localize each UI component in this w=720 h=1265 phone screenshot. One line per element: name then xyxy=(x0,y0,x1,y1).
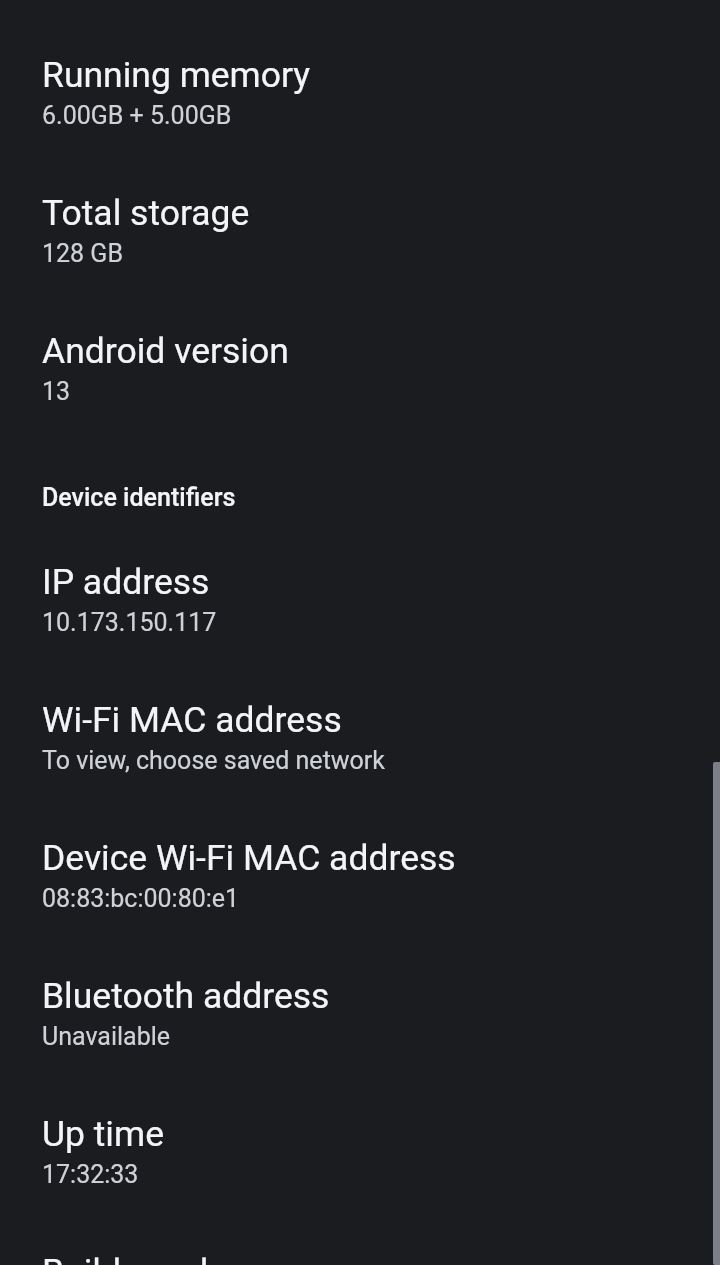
button[interactable]: IP address xyxy=(0,547,720,651)
button[interactable]: Up time xyxy=(0,1099,720,1203)
button[interactable]: Total storage xyxy=(0,178,720,282)
button[interactable]: Device Wi-Fi MAC address xyxy=(0,823,720,927)
staticText: Device Wi-Fi MAC address xyxy=(42,837,456,879)
button[interactable]: Running memory xyxy=(0,40,720,144)
staticText: Build number xyxy=(42,1251,251,1265)
staticText: Up time xyxy=(42,1113,164,1155)
staticText: Device identifiers xyxy=(42,483,236,512)
staticText: Wi-Fi MAC address xyxy=(42,699,342,741)
staticText: 128 GB xyxy=(42,239,123,268)
staticText: Running memory xyxy=(42,54,311,96)
staticText: 08:83:bc:00:80:e1 xyxy=(42,884,240,913)
staticText: 6.00GB + 5.00GB xyxy=(42,101,232,130)
staticText: 10.173.150.117 xyxy=(42,608,217,637)
button[interactable]: Wi-Fi MAC address xyxy=(0,685,720,789)
staticText: IP address xyxy=(42,561,210,603)
staticText: Total storage xyxy=(42,192,250,234)
staticText: 17:32:33 xyxy=(42,1160,139,1189)
staticText: Unavailable xyxy=(42,1022,171,1051)
button[interactable]: Bluetooth address xyxy=(0,961,720,1065)
button[interactable]: Build number xyxy=(0,1237,720,1265)
staticText: 13 xyxy=(42,377,71,406)
staticText: To view, choose saved network xyxy=(42,746,385,775)
button[interactable]: Android version xyxy=(0,316,720,420)
staticText: Android version xyxy=(42,330,289,372)
staticText: Bluetooth address xyxy=(42,975,330,1017)
